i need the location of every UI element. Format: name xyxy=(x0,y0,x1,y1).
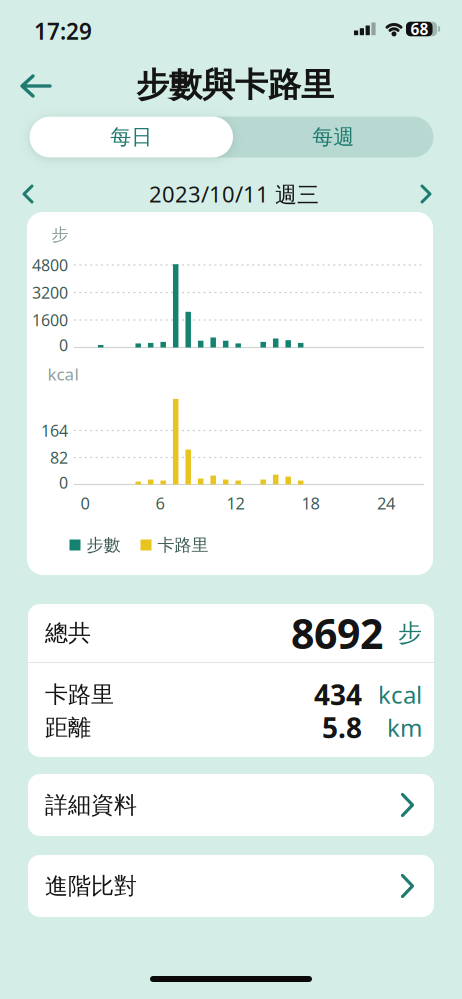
button[interactable] xyxy=(413,179,438,209)
staticText: 68 xyxy=(410,19,428,39)
staticText: 步 xyxy=(51,224,68,245)
staticText: 164 xyxy=(41,420,68,441)
staticText: 0 xyxy=(59,472,68,493)
staticText: 每日 xyxy=(110,124,152,150)
staticText: 進階比對 xyxy=(45,872,137,900)
staticText: 卡路里 xyxy=(157,535,208,555)
staticText: 總共 xyxy=(45,619,91,647)
button[interactable]: 進階比對 xyxy=(28,855,434,917)
staticText: 3200 xyxy=(32,282,68,303)
staticText: 0 xyxy=(80,492,89,514)
button[interactable]: 詳細資料 xyxy=(28,774,434,836)
staticText: 82 xyxy=(50,447,68,468)
staticText: 4800 xyxy=(32,254,68,276)
staticText: 每週 xyxy=(312,124,354,150)
staticText: kcal xyxy=(47,363,78,385)
staticText: 5.8 xyxy=(322,709,362,746)
staticText: 17:29 xyxy=(34,16,92,46)
button[interactable]: 每日 xyxy=(29,116,233,157)
staticText: 12 xyxy=(226,492,244,514)
staticText: 詳細資料 xyxy=(45,791,137,819)
staticText: 18 xyxy=(301,492,319,514)
staticText: 24 xyxy=(377,492,395,514)
staticText: 步 xyxy=(398,618,422,648)
staticText: km xyxy=(387,712,422,743)
staticText: 434 xyxy=(314,676,362,713)
staticText: 步數與卡路里 xyxy=(136,65,334,105)
staticText: 距離 xyxy=(45,713,91,742)
staticText: 卡路里 xyxy=(45,680,114,709)
staticText: 步數 xyxy=(86,535,120,555)
staticText: 0 xyxy=(59,334,68,356)
button[interactable]: 每週 xyxy=(233,116,433,157)
button[interactable] xyxy=(15,179,40,209)
staticText: kcal xyxy=(378,679,422,710)
staticText: 6 xyxy=(155,492,164,514)
staticText: 1600 xyxy=(32,309,68,331)
button[interactable] xyxy=(15,68,57,104)
staticText: 8692 xyxy=(291,606,383,660)
staticText: 2023/10/11 週三 xyxy=(149,179,319,209)
